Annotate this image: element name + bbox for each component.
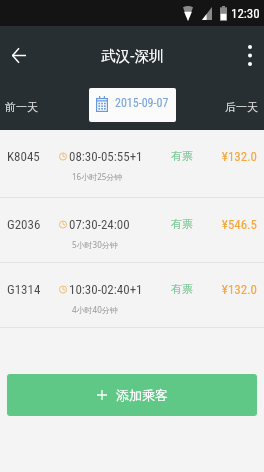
staticText: 添加乘客 [116, 387, 168, 403]
button[interactable]: 前一天 [0, 92, 46, 122]
staticText: ¥546.5 [210, 217, 257, 232]
staticText: 08:30-05:55+1 [69, 149, 143, 164]
button[interactable]: 后一天 [217, 92, 264, 122]
staticText: 后一天 [225, 100, 258, 114]
button[interactable]: Back [5, 41, 33, 69]
button[interactable]: G2036 [0, 198, 264, 262]
staticText: 武汉-深圳 [101, 45, 164, 65]
staticText: 有票 [171, 217, 193, 231]
staticText: 07:30-24:00 [69, 217, 130, 232]
staticText: 4小时40分钟 [72, 304, 118, 315]
staticText: 10:30-02:40+1 [69, 282, 143, 297]
button[interactable]: 2015-09-07 [89, 88, 176, 122]
staticText: 5小时30分钟 [72, 239, 118, 250]
button[interactable]: 添加乘客 [7, 374, 257, 416]
button[interactable]: K8045 [0, 130, 264, 197]
staticText: ¥132.0 [210, 149, 257, 164]
staticText: 16小时25分钟 [72, 171, 123, 182]
staticText: 有票 [171, 282, 193, 296]
staticText: 有票 [171, 149, 193, 163]
button[interactable]: More options [236, 41, 264, 69]
staticText: G1314 [7, 282, 41, 297]
staticText: ¥132.0 [210, 282, 257, 297]
button[interactable]: G1314 [0, 263, 264, 327]
staticText: K8045 [7, 149, 40, 164]
staticText: 前一天 [5, 100, 38, 114]
staticText: 12:30 [231, 6, 260, 21]
staticText: 2015-09-07 [115, 96, 169, 110]
staticText: G2036 [7, 217, 41, 232]
